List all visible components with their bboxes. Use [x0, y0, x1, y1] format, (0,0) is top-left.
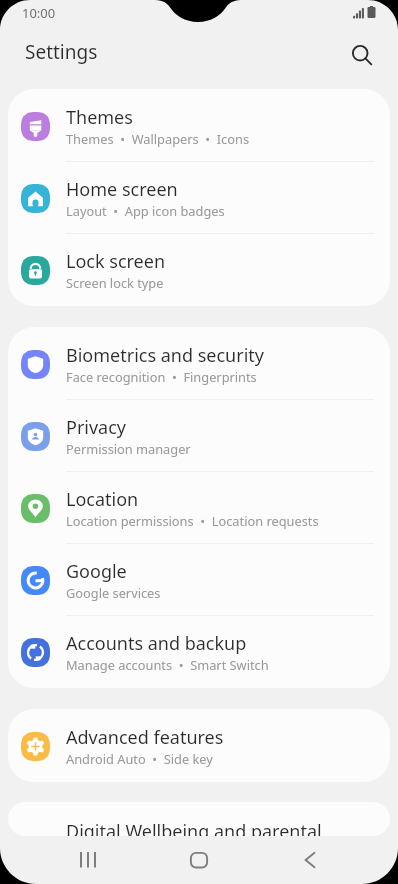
button[interactable]: Google: [8, 544, 390, 616]
staticText: 10:00: [22, 4, 56, 22]
staticText: Android Auto • Side key: [66, 750, 213, 767]
staticText: Screen lock type: [66, 274, 164, 291]
button[interactable]: Search: [339, 30, 386, 82]
button[interactable]: Themes: [8, 90, 390, 162]
staticText: Accounts and backup: [66, 631, 247, 656]
button[interactable]: Back: [286, 836, 334, 884]
button[interactable]: Privacy: [8, 400, 390, 472]
staticText: Settings: [25, 39, 98, 65]
button[interactable]: Home: [175, 836, 223, 884]
button[interactable]: Home screen: [8, 162, 390, 234]
button[interactable]: Digital Wellbeing and parental: [8, 802, 390, 836]
staticText: Google: [66, 559, 127, 584]
staticText: Face recognition • Fingerprints: [66, 368, 257, 385]
staticText: Privacy: [66, 415, 127, 440]
button[interactable]: Biometrics and security: [8, 328, 390, 400]
staticText: Location permissions • Location requests: [66, 512, 319, 529]
staticText: Themes: [66, 105, 133, 130]
staticText: Lock screen: [66, 249, 166, 274]
staticText: Biometrics and security: [66, 343, 264, 368]
staticText: Google services: [66, 584, 161, 601]
staticText: Location: [66, 487, 139, 512]
button[interactable]: Recent apps: [64, 836, 112, 884]
staticText: Manage accounts • Smart Switch: [66, 656, 269, 673]
staticText: Permission manager: [66, 440, 191, 457]
button[interactable]: Location: [8, 472, 390, 544]
button[interactable]: Accounts and backup: [8, 616, 390, 688]
staticText: Themes • Wallpapers • Icons: [66, 130, 250, 147]
staticText: Home screen: [66, 177, 178, 202]
staticText: Digital Wellbeing and parental: [66, 819, 322, 836]
staticText: Layout • App icon badges: [66, 202, 225, 219]
button[interactable]: Advanced features: [8, 710, 390, 782]
button[interactable]: Lock screen: [8, 234, 390, 306]
staticText: Advanced features: [66, 725, 224, 750]
